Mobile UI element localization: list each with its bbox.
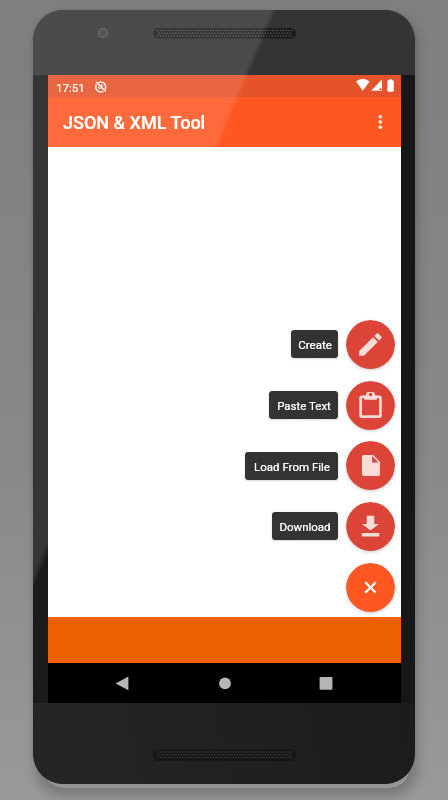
staticText: JSON & XML Tool bbox=[63, 112, 206, 133]
button[interactable]: More options bbox=[358, 97, 402, 147]
button[interactable]: Create bbox=[291, 330, 338, 358]
staticText: Download bbox=[279, 520, 331, 533]
button[interactable]: Download bbox=[346, 502, 395, 551]
button[interactable]: Recent apps bbox=[302, 663, 350, 703]
button[interactable]: Download bbox=[272, 512, 338, 540]
button[interactable]: Paste Text bbox=[269, 391, 338, 419]
staticText: Create bbox=[298, 338, 332, 351]
staticText: Load From File bbox=[254, 460, 330, 473]
button[interactable]: Load From File bbox=[346, 441, 395, 490]
button[interactable]: Create bbox=[346, 320, 395, 369]
staticText: Paste Text bbox=[277, 399, 331, 412]
button[interactable]: Close menu bbox=[346, 563, 395, 612]
button[interactable]: Back bbox=[98, 663, 146, 703]
staticText: 17:51 bbox=[56, 81, 85, 94]
button[interactable]: Paste Text bbox=[346, 381, 395, 430]
button[interactable]: Load From File bbox=[245, 452, 338, 480]
button[interactable]: Home bbox=[201, 663, 249, 703]
